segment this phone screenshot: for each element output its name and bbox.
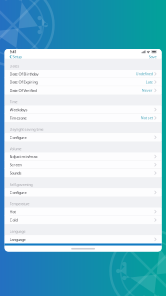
staticText: Configure (10, 135, 27, 140)
staticText: Not set (141, 115, 153, 120)
staticText: Weekdays (10, 107, 28, 112)
staticText: Daylight saving time (10, 127, 44, 132)
staticText: Sounds (10, 170, 22, 176)
staticText: Cold (10, 217, 18, 223)
staticText: Date Of Birthday (10, 71, 39, 77)
staticText: Self-governing (10, 182, 33, 187)
staticText: Never (142, 88, 153, 93)
button[interactable]: Date Of Birthday (5, 70, 162, 78)
staticText: Setup (12, 54, 21, 59)
button[interactable]: Save (149, 54, 157, 59)
staticText: Language (10, 237, 26, 242)
button[interactable]: Screen (5, 161, 162, 169)
button[interactable]: Setup (10, 54, 21, 59)
staticText: Save (149, 54, 157, 59)
button[interactable]: Weekdays (5, 106, 162, 114)
button[interactable]: Adjust min/max (5, 153, 162, 161)
staticText: Date Of Expiring (10, 79, 38, 85)
staticText: Undefined (136, 71, 153, 76)
staticText: Volume (10, 146, 22, 151)
button[interactable]: Configure (5, 133, 162, 141)
staticText: Date Of Verified (10, 88, 37, 93)
staticText: Screen (10, 162, 22, 167)
button[interactable]: Configure (5, 188, 162, 196)
staticText: 9:41 (10, 49, 17, 54)
staticText: Adjust min/max (10, 154, 38, 159)
button[interactable]: Hot (5, 208, 162, 216)
staticText: Hot (10, 209, 16, 214)
button[interactable]: Cold (5, 216, 162, 224)
button[interactable]: Date Of Expiring (5, 78, 162, 86)
button[interactable]: Date Of Verified (5, 86, 162, 94)
staticText: Language (10, 229, 26, 234)
staticText: Late (146, 79, 153, 85)
button[interactable]: Language (5, 235, 162, 243)
staticText: Dates (10, 64, 20, 69)
staticText: Temperature (10, 201, 30, 206)
button[interactable]: Timezone (5, 114, 162, 122)
staticText: Time (10, 99, 18, 104)
button[interactable]: Sounds (5, 169, 162, 177)
staticText: Timezone (10, 115, 27, 121)
staticText: Configure (10, 190, 27, 195)
